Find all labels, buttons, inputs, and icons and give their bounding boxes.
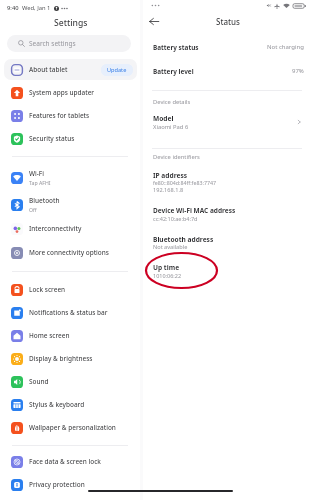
- staticText: Not available: [153, 243, 188, 251]
- staticText: Tap AFHI: [29, 179, 51, 186]
- button[interactable]: Home screen: [4, 325, 137, 346]
- staticText: Wed, Jan 1: [22, 4, 51, 12]
- staticText: Interconnectivity: [29, 224, 82, 233]
- staticText: Update: [107, 66, 127, 74]
- staticText: IP address: [153, 171, 188, 180]
- staticText: More connectivity options: [29, 248, 109, 257]
- staticText: Privacy protection: [29, 480, 85, 489]
- staticText: 9:40: [7, 4, 19, 12]
- staticText: 192.168.1.8: [153, 186, 184, 194]
- button[interactable]: Wallpaper & personalization: [4, 417, 137, 438]
- staticText: Features for tablets: [29, 111, 90, 120]
- button[interactable]: Face data & screen lock: [4, 451, 137, 472]
- staticText: Lock screen: [29, 285, 66, 294]
- staticText: Wi-Fi: [29, 169, 44, 178]
- staticText: Sound: [29, 377, 49, 386]
- button[interactable]: Interconnectivity: [4, 218, 137, 239]
- button[interactable]: Search settings: [7, 35, 131, 52]
- button[interactable]: Security status: [4, 128, 137, 149]
- button[interactable]: Back: [145, 13, 162, 30]
- staticText: Status: [216, 16, 241, 27]
- staticText: Settings: [54, 17, 88, 29]
- button[interactable]: System apps updater: [4, 82, 137, 103]
- staticText: 1010:06:22: [153, 272, 182, 279]
- button[interactable]: [143, 61, 313, 83]
- staticText: Stylus & keyboard: [29, 400, 85, 409]
- staticText: About tablet: [29, 65, 68, 74]
- staticText: Not charging: [267, 43, 304, 51]
- staticText: cc:42:10:ae:b4:7d: [153, 215, 198, 222]
- button[interactable]: Privacy protection: [4, 474, 137, 495]
- staticText: Face data & screen lock: [29, 457, 101, 466]
- button[interactable]: Notifications & status bar: [4, 302, 137, 323]
- button[interactable]: Display & brightness: [4, 348, 137, 369]
- staticText: Device details: [153, 98, 191, 106]
- staticText: Home screen: [29, 331, 70, 340]
- staticText: Wallpaper & personalization: [29, 423, 116, 432]
- staticText: Xiaomi Pad 6: [153, 123, 189, 131]
- staticText: Battery level: [153, 67, 194, 76]
- button[interactable]: Features for tablets: [4, 105, 137, 126]
- staticText: Off: [29, 206, 37, 213]
- staticText: Security status: [29, 134, 75, 143]
- staticText: Notifications & status bar: [29, 308, 108, 317]
- button[interactable]: More connectivity options: [4, 242, 137, 263]
- staticText: Bluetooth: [29, 196, 60, 205]
- button[interactable]: Sound: [4, 371, 137, 392]
- staticText: Device Wi-Fi MAC address: [153, 206, 236, 215]
- button[interactable]: Wi-Fi: [4, 167, 137, 188]
- staticText: Up time: [153, 263, 180, 272]
- staticText: Device identifiers: [153, 153, 200, 161]
- staticText: 97%: [292, 67, 304, 75]
- staticText: Model: [153, 114, 174, 123]
- staticText: System apps updater: [29, 88, 95, 97]
- button[interactable]: Lock screen: [4, 279, 137, 300]
- staticText: fe80::804d:84ff:fe83:7747: [153, 179, 217, 186]
- staticText: Search settings: [29, 39, 76, 48]
- button[interactable]: Stylus & keyboard: [4, 394, 137, 415]
- button[interactable]: Bluetooth: [4, 194, 137, 215]
- staticText: Display & brightness: [29, 354, 93, 363]
- staticText: Bluetooth address: [153, 235, 214, 244]
- staticText: Battery status: [153, 43, 199, 52]
- button[interactable]: About tablet: [4, 59, 137, 80]
- button[interactable]: [143, 37, 313, 59]
- button[interactable]: [143, 110, 313, 134]
